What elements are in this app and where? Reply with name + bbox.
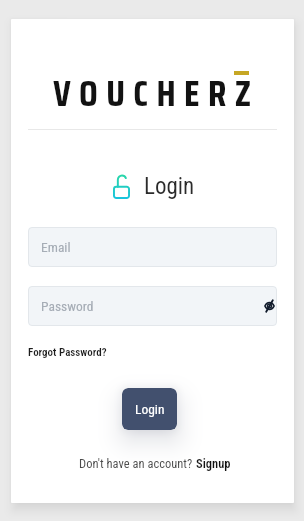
- button[interactable]: Show password: [259, 296, 277, 316]
- staticText: Forgot Password?: [28, 346, 107, 359]
- button[interactable]: Forgot Password?: [28, 346, 107, 359]
- staticText: Email: [41, 239, 71, 255]
- button[interactable]: Email: [28, 227, 277, 267]
- staticText: Don't have an account?: [79, 456, 196, 471]
- staticText: Login: [144, 173, 195, 200]
- button[interactable]: Don't have an account?: [79, 456, 231, 471]
- staticText: Signup: [196, 456, 231, 471]
- button[interactable]: Password: [28, 286, 277, 326]
- staticText: Login: [135, 401, 165, 417]
- button[interactable]: Login: [122, 388, 177, 430]
- staticText: Password: [41, 298, 94, 314]
- staticText: VOUCHERZ: [53, 64, 260, 122]
